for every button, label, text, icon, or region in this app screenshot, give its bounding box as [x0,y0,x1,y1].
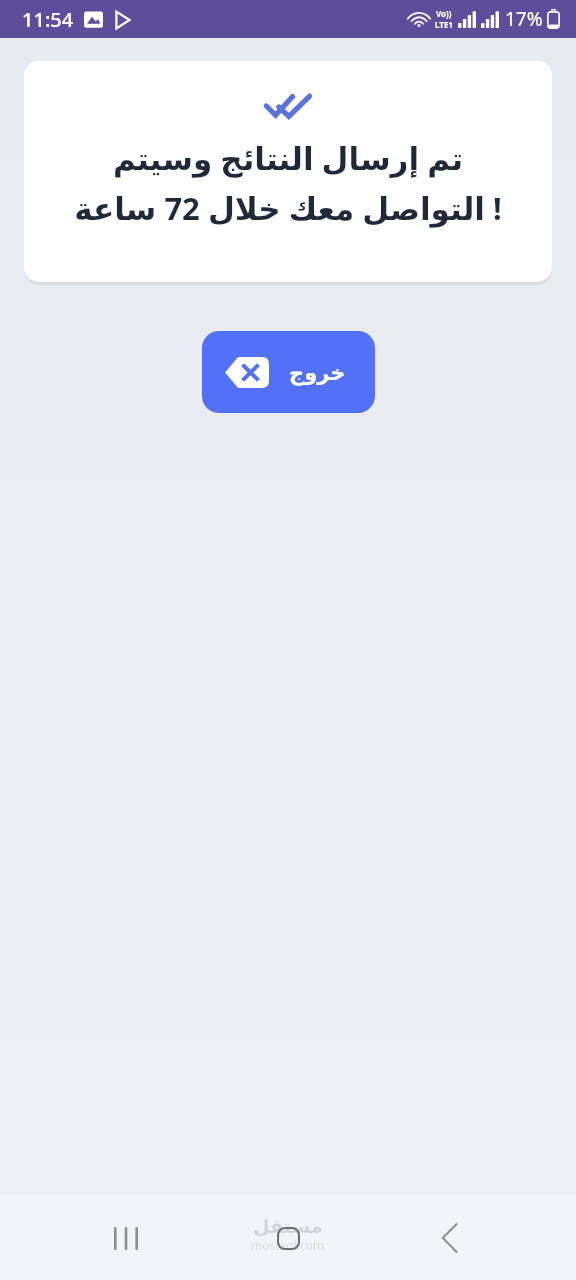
staticText: mostaql.com [251,1237,325,1253]
button[interactable]: Home [252,1202,324,1274]
other: Exit [225,357,269,388]
staticText: 11:54 [22,6,74,33]
button[interactable]: تم إرسال النتائج وسيتم [24,61,552,282]
staticText: Vo)) [436,8,452,19]
button[interactable]: Back [414,1202,486,1274]
staticText: تم إرسال النتائج وسيتم [34,137,542,179]
staticText: التواصل معك خلال 72 ساعة ! [34,187,542,229]
staticText: خروج [289,361,346,385]
staticText: LTE1 [435,19,453,30]
button[interactable]: Recents [90,1202,162,1274]
staticText: 17% [505,6,543,32]
button[interactable]: Exit [202,331,375,413]
staticText: مستقل [253,1215,323,1237]
